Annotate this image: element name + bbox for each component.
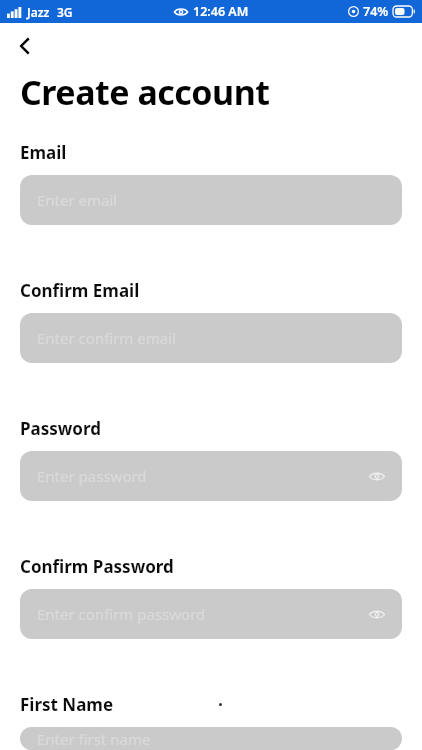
staticText: Enter password [37, 466, 147, 486]
button[interactable]: Show password [366, 603, 388, 625]
staticText: Create account [20, 69, 270, 115]
staticText: 3G [57, 4, 73, 20]
button[interactable]: Enter confirm password [20, 589, 402, 639]
staticText: 74% [363, 3, 389, 20]
staticText: Confirm Email [20, 279, 140, 302]
button[interactable]: Enter first name [20, 727, 402, 750]
staticText: Enter first name [37, 729, 151, 749]
staticText: Jazz [27, 4, 50, 20]
staticText: Enter confirm email [37, 328, 176, 348]
button[interactable]: Enter password [20, 451, 402, 501]
button[interactable]: Enter confirm email [20, 313, 402, 363]
button[interactable]: Enter email [20, 175, 402, 225]
button[interactable]: Back [10, 31, 40, 61]
button[interactable]: Show password [366, 465, 388, 487]
staticText: Confirm Password [20, 555, 174, 578]
staticText: Enter confirm password [37, 604, 206, 624]
staticText: Enter email [37, 190, 118, 210]
staticText: 12:46 AM [193, 3, 249, 20]
staticText: Email [20, 141, 67, 164]
staticText: First Name [20, 693, 114, 716]
staticText: Password [20, 417, 101, 440]
